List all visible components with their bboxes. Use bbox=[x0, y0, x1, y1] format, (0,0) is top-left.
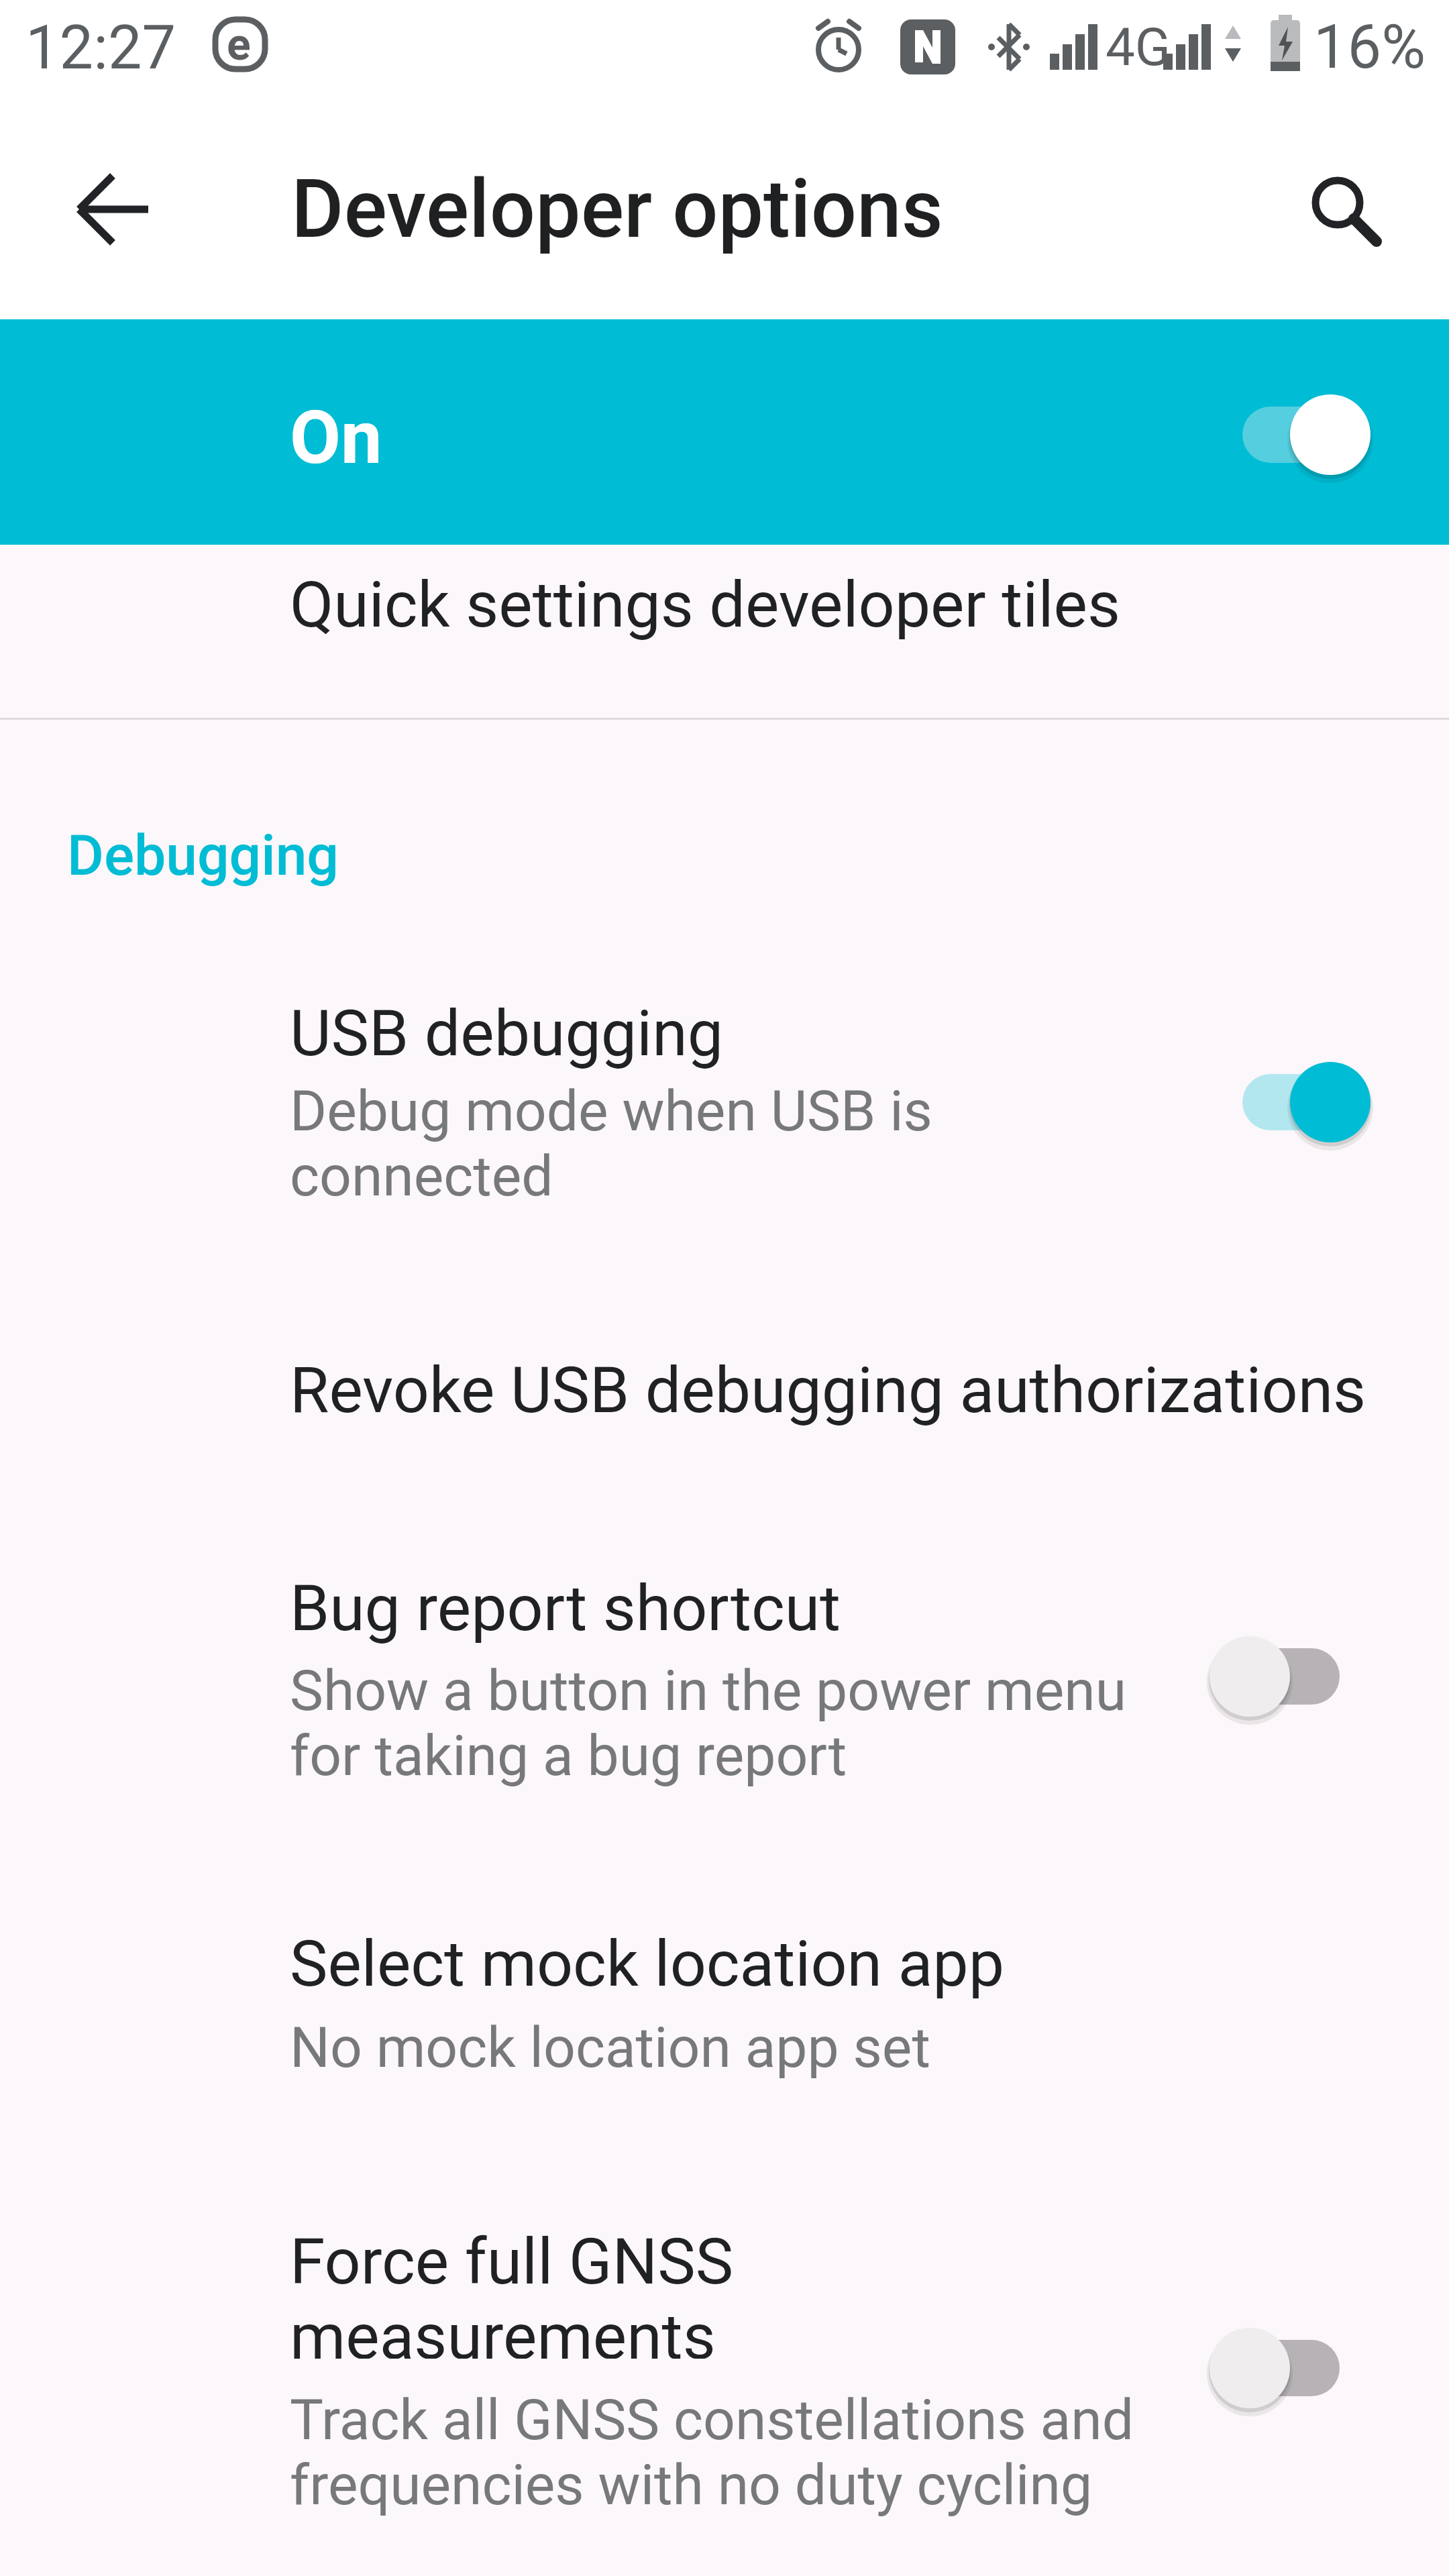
button[interactable]: USB debugging bbox=[0, 953, 1449, 1261]
button[interactable]: Bug report shortcut bbox=[0, 1524, 1449, 1845]
staticText: 12:27 bbox=[25, 13, 176, 83]
button[interactable]: Revoke USB debugging authorizations bbox=[0, 1309, 1449, 1484]
staticText: No mock location app set bbox=[290, 2015, 930, 2080]
button[interactable]: On bbox=[0, 319, 1449, 545]
staticText: 16% bbox=[1313, 12, 1426, 83]
staticText: Select mock location app bbox=[290, 1927, 1004, 2001]
staticText: Track all GNSS constellations and freque… bbox=[290, 2387, 1134, 2518]
staticText: Developer options bbox=[291, 162, 943, 257]
button[interactable]: Force full GNSS measurements bbox=[0, 2173, 1449, 2576]
staticText: Bug report shortcut bbox=[290, 1571, 841, 1646]
button[interactable] bbox=[50, 145, 179, 274]
staticText: Force full GNSS measurements bbox=[290, 2224, 734, 2359]
staticText: 4G bbox=[1106, 17, 1171, 78]
staticText: Revoke USB debugging authorizations bbox=[290, 1353, 1366, 1428]
button[interactable]: Select mock location app bbox=[0, 1880, 1449, 2140]
staticText: Debug mode when USB is connected bbox=[290, 1078, 932, 1209]
button[interactable]: Quick settings developer tiles bbox=[0, 545, 1449, 716]
staticText: On bbox=[290, 394, 382, 481]
staticText: e bbox=[227, 19, 251, 70]
staticText: USB debugging bbox=[290, 996, 724, 1071]
staticText: Show a button in the power menu for taki… bbox=[290, 1658, 1126, 1788]
staticText: Quick settings developer tiles bbox=[290, 568, 1120, 642]
staticText: Debugging bbox=[67, 822, 339, 888]
button[interactable] bbox=[1288, 154, 1402, 268]
